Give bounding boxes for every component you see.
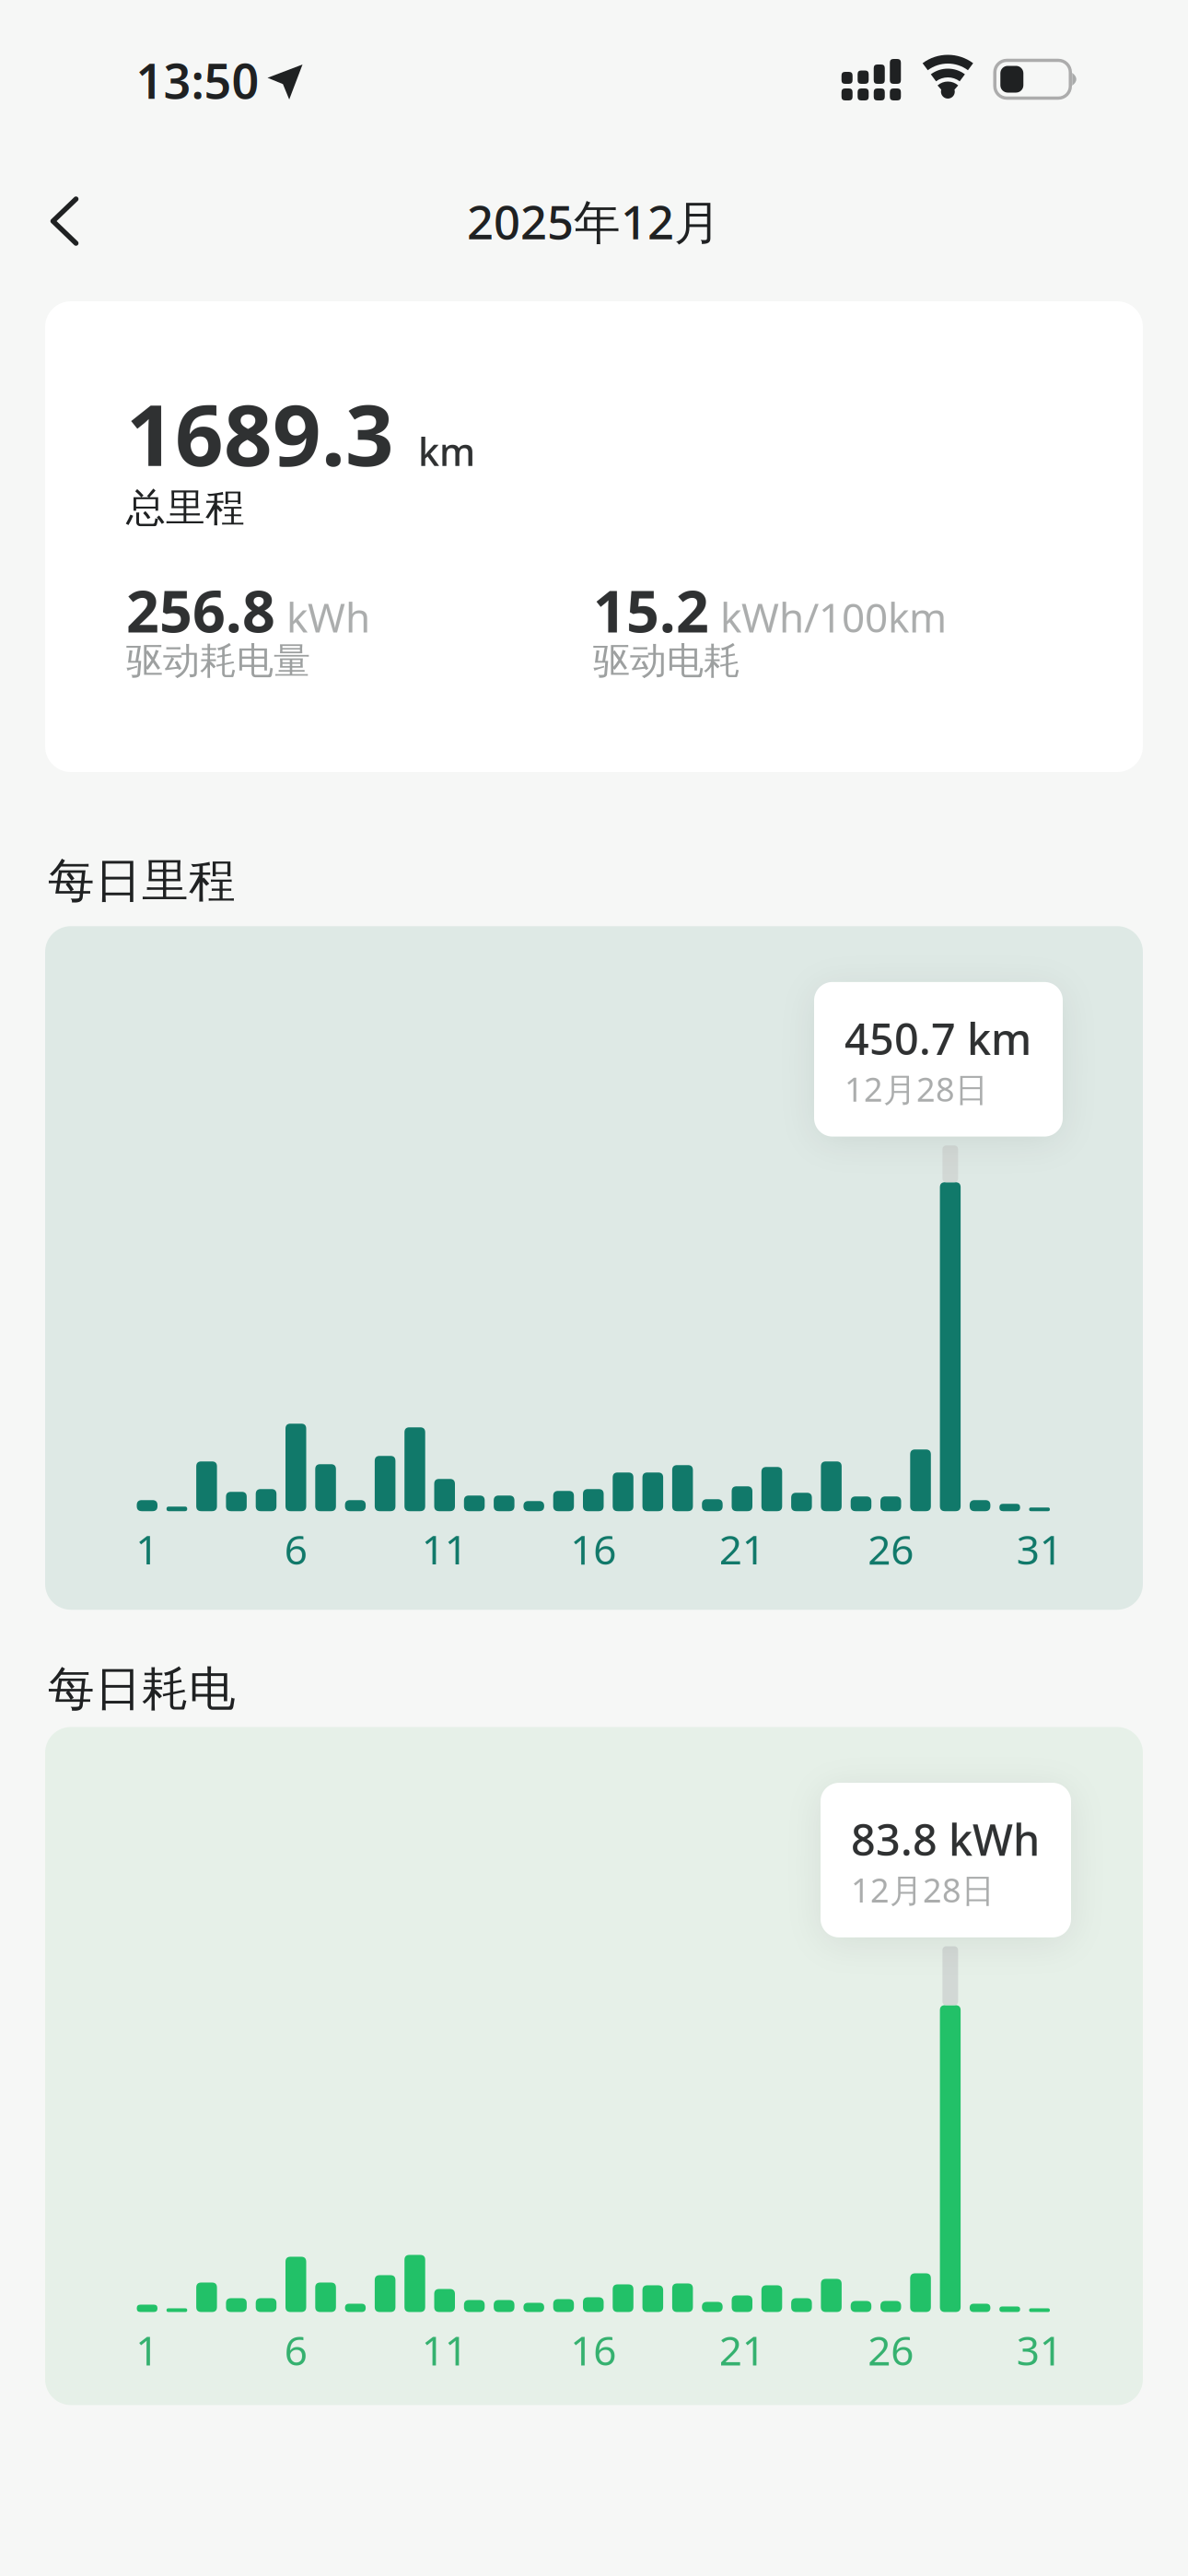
staticText: 450.7 km [844,1010,1031,1067]
staticText: 12月28日 [851,1868,995,1912]
staticText: 6 [284,1522,307,1576]
staticText: kWh/100km [720,590,947,644]
staticText: 16 [570,2323,616,2377]
staticText: 每日耗电 [48,1660,236,1718]
staticText: 驱动耗电量 [126,638,310,684]
staticText: 每日里程 [48,852,236,910]
staticText: 总里程 [126,484,245,532]
staticText: 31 [1017,1522,1063,1576]
button[interactable]: Back [23,180,106,263]
staticText: 2025年12月 [467,190,721,252]
staticText: 1689.3 [126,377,394,489]
staticText: 11 [422,2323,468,2377]
staticText: 驱动电耗 [593,638,740,684]
staticText: 6 [284,2323,307,2377]
staticText: 12月28日 [844,1067,988,1111]
staticText: 256.8 [126,572,275,648]
staticText: 26 [868,1522,914,1576]
staticText: 21 [719,2323,765,2377]
staticText: 1 [136,1522,159,1576]
staticText: kWh [286,590,370,644]
staticText: 21 [719,1522,765,1576]
staticText: 16 [570,1522,616,1576]
staticText: 15.2 [593,572,709,648]
staticText: 26 [868,2323,914,2377]
staticText: 31 [1017,2323,1063,2377]
staticText: 83.8 kWh [851,1810,1040,1868]
staticText: 1 [136,2323,159,2377]
staticText: 13:50 [136,48,259,112]
staticText: 11 [422,1522,468,1576]
staticText: km [418,426,475,477]
